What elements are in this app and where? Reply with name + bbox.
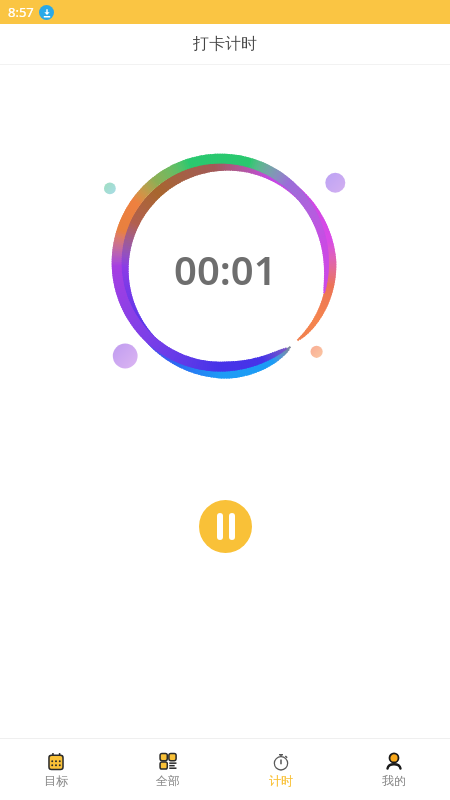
button[interactable]: 全部 <box>112 739 224 800</box>
staticText: 我的 <box>382 773 406 788</box>
button[interactable]: 目标 <box>0 739 112 800</box>
staticText: 计时 <box>269 773 293 788</box>
staticText: 8:57 <box>8 3 34 21</box>
button[interactable]: 我的 <box>337 739 450 800</box>
staticText: 全部 <box>156 773 180 788</box>
staticText: 00:01 <box>174 242 277 296</box>
staticText: 打卡计时 <box>193 34 257 54</box>
button[interactable]: Pause <box>199 500 252 553</box>
staticText: 目标 <box>44 773 68 788</box>
button[interactable]: 计时 <box>224 739 337 800</box>
